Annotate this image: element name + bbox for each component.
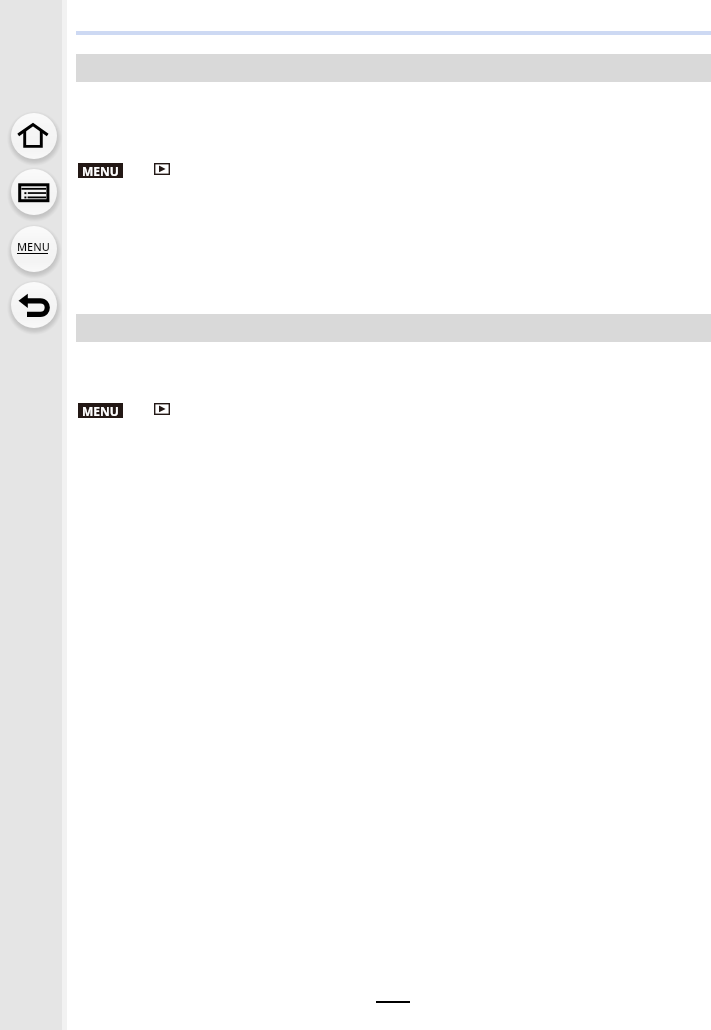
button[interactable]: MENU bbox=[78, 163, 123, 178]
button[interactable]: Home bbox=[5, 107, 63, 165]
staticText: MENU bbox=[82, 403, 119, 418]
button[interactable]: Menu bbox=[5, 220, 63, 278]
staticText: MENU bbox=[82, 163, 119, 178]
button[interactable]: Playback mode bbox=[154, 403, 170, 415]
button[interactable]: Contents bbox=[5, 163, 63, 221]
button[interactable]: MENU bbox=[78, 403, 123, 418]
staticText: MENU bbox=[17, 239, 50, 254]
button[interactable]: Back bbox=[5, 276, 63, 334]
button[interactable]: Playback mode bbox=[154, 163, 170, 175]
